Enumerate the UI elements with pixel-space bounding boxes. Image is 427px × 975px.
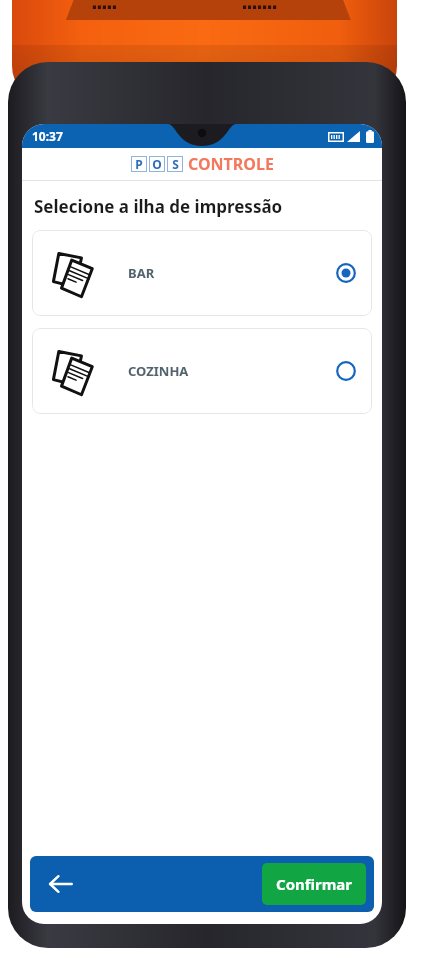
- staticText: BAR: [128, 264, 155, 282]
- button[interactable]: BAR: [32, 230, 372, 316]
- button[interactable]: Voltar: [38, 862, 82, 906]
- staticText: Selecione a ilha de impressão: [34, 195, 283, 218]
- button[interactable]: Confirmar: [262, 863, 366, 905]
- staticText: COZINHA: [128, 362, 189, 380]
- staticText: S: [172, 156, 179, 172]
- staticText: Confirmar: [276, 874, 353, 894]
- staticText: P: [135, 156, 143, 172]
- button[interactable]: COZINHA: [32, 328, 372, 414]
- staticText: 10:37: [32, 128, 63, 144]
- staticText: O: [152, 156, 162, 172]
- staticText: CONTROLE: [188, 153, 274, 175]
